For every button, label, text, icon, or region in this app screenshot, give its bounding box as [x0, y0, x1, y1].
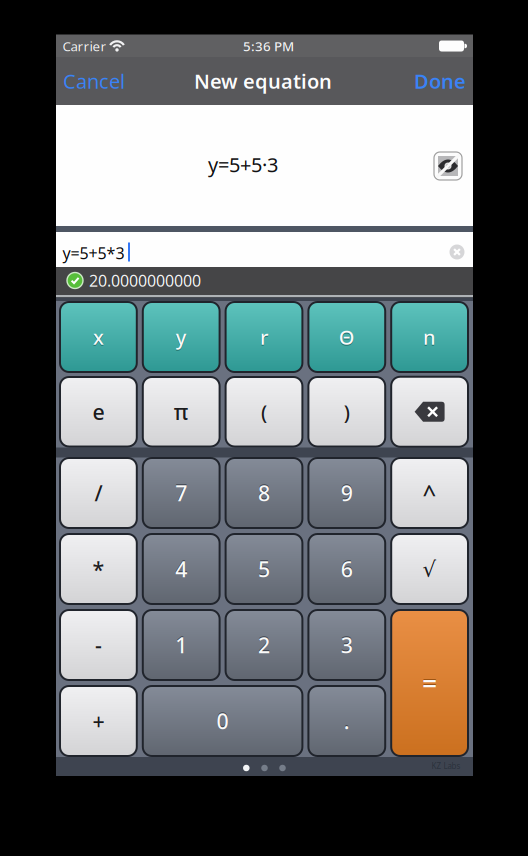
- staticText: r: [260, 325, 268, 351]
- staticText: 20.0000000000: [89, 270, 201, 291]
- button[interactable]: ^: [391, 458, 468, 528]
- staticText: +: [92, 706, 104, 734]
- button[interactable]: .: [308, 686, 385, 756]
- button[interactable]: 0: [143, 686, 302, 756]
- staticText: New equation: [194, 68, 332, 94]
- staticText: r: [260, 324, 268, 350]
- staticText: 0: [217, 706, 229, 734]
- button[interactable]: Page 3: [279, 765, 286, 771]
- staticText: 3: [341, 630, 353, 658]
- staticText: √: [423, 557, 437, 581]
- staticText: Done: [414, 68, 466, 94]
- staticText: Carrier: [62, 37, 106, 55]
- button[interactable]: Page 2: [261, 765, 268, 771]
- staticText: e: [92, 397, 104, 425]
- staticText: 2: [258, 631, 270, 659]
- button[interactable]: -: [60, 610, 137, 680]
- button[interactable]: π: [143, 377, 220, 446]
- button[interactable]: 7: [143, 458, 220, 528]
- staticText: √: [423, 556, 437, 580]
- staticText: n: [423, 325, 436, 351]
- staticText: 8: [258, 479, 270, 507]
- staticText: 5:36 PM: [243, 37, 294, 55]
- button[interactable]: Done: [414, 68, 466, 94]
- staticText: ): [344, 398, 350, 425]
- staticText: 5: [258, 554, 270, 582]
- staticText: =: [422, 665, 437, 701]
- staticText: π: [174, 398, 189, 426]
- staticText: e: [92, 398, 104, 426]
- button[interactable]: /: [60, 458, 137, 528]
- button[interactable]: x: [60, 302, 137, 372]
- button[interactable]: =: [391, 610, 468, 756]
- staticText: ): [344, 397, 350, 424]
- staticText: Θ: [339, 325, 355, 351]
- staticText: -: [95, 631, 102, 659]
- staticText: x: [93, 325, 104, 351]
- button[interactable]: e: [60, 377, 137, 446]
- button[interactable]: +: [60, 686, 137, 756]
- staticText: KZ Labs: [431, 761, 460, 771]
- staticText: /: [94, 478, 102, 506]
- staticText: ^: [423, 476, 437, 508]
- staticText: .: [344, 707, 350, 735]
- staticText: π: [174, 397, 189, 425]
- staticText: *: [92, 554, 104, 582]
- button[interactable]: Toggle equation preview: [434, 152, 462, 180]
- staticText: y=5+5·3: [208, 151, 278, 178]
- staticText: 5: [258, 555, 270, 583]
- button[interactable]: √: [391, 534, 468, 604]
- button[interactable]: 6: [308, 534, 385, 604]
- button[interactable]: 3: [308, 610, 385, 680]
- button[interactable]: n: [391, 302, 468, 372]
- staticText: 3: [341, 631, 353, 659]
- staticText: +: [92, 707, 104, 735]
- button[interactable]: *: [60, 534, 137, 604]
- staticText: (: [261, 397, 267, 424]
- staticText: y=5+5*3: [62, 242, 124, 264]
- staticText: 1: [175, 630, 187, 658]
- staticText: 1: [175, 631, 187, 659]
- staticText: =: [422, 664, 437, 700]
- staticText: 2: [258, 630, 270, 658]
- staticText: 7: [175, 479, 187, 507]
- staticText: 4: [175, 554, 187, 582]
- staticText: 9: [341, 478, 353, 506]
- staticText: n: [423, 324, 436, 350]
- staticText: /: [94, 479, 102, 507]
- staticText: -: [95, 630, 102, 658]
- staticText: 6: [341, 554, 353, 582]
- staticText: .: [344, 706, 350, 734]
- button[interactable]: 4: [143, 534, 220, 604]
- button[interactable]: Cancel: [63, 68, 125, 94]
- staticText: 7: [175, 478, 187, 506]
- staticText: ^: [423, 477, 437, 509]
- button[interactable]: r: [226, 302, 302, 372]
- staticText: Cancel: [63, 68, 125, 94]
- button[interactable]: Θ: [308, 302, 385, 372]
- button[interactable]: y: [143, 302, 220, 372]
- staticText: (: [261, 398, 267, 425]
- staticText: 6: [341, 555, 353, 583]
- button[interactable]: 5: [226, 534, 302, 604]
- button[interactable]: 9: [308, 458, 385, 528]
- button[interactable]: (: [226, 377, 302, 446]
- button[interactable]: Delete: [391, 377, 468, 447]
- button[interactable]: 8: [226, 458, 302, 528]
- staticText: x: [93, 324, 104, 350]
- staticText: Θ: [339, 324, 355, 350]
- button[interactable]: 2: [226, 610, 302, 680]
- staticText: 0: [217, 707, 229, 735]
- staticText: y: [176, 324, 187, 350]
- staticText: *: [92, 555, 104, 583]
- staticText: y: [176, 325, 187, 351]
- button[interactable]: ): [308, 377, 385, 446]
- staticText: 9: [341, 479, 353, 507]
- staticText: 8: [258, 478, 270, 506]
- button[interactable]: 1: [143, 610, 220, 680]
- button[interactable]: Page 1: [243, 765, 250, 771]
- staticText: 4: [175, 555, 187, 583]
- button[interactable]: Clear text: [449, 244, 464, 259]
